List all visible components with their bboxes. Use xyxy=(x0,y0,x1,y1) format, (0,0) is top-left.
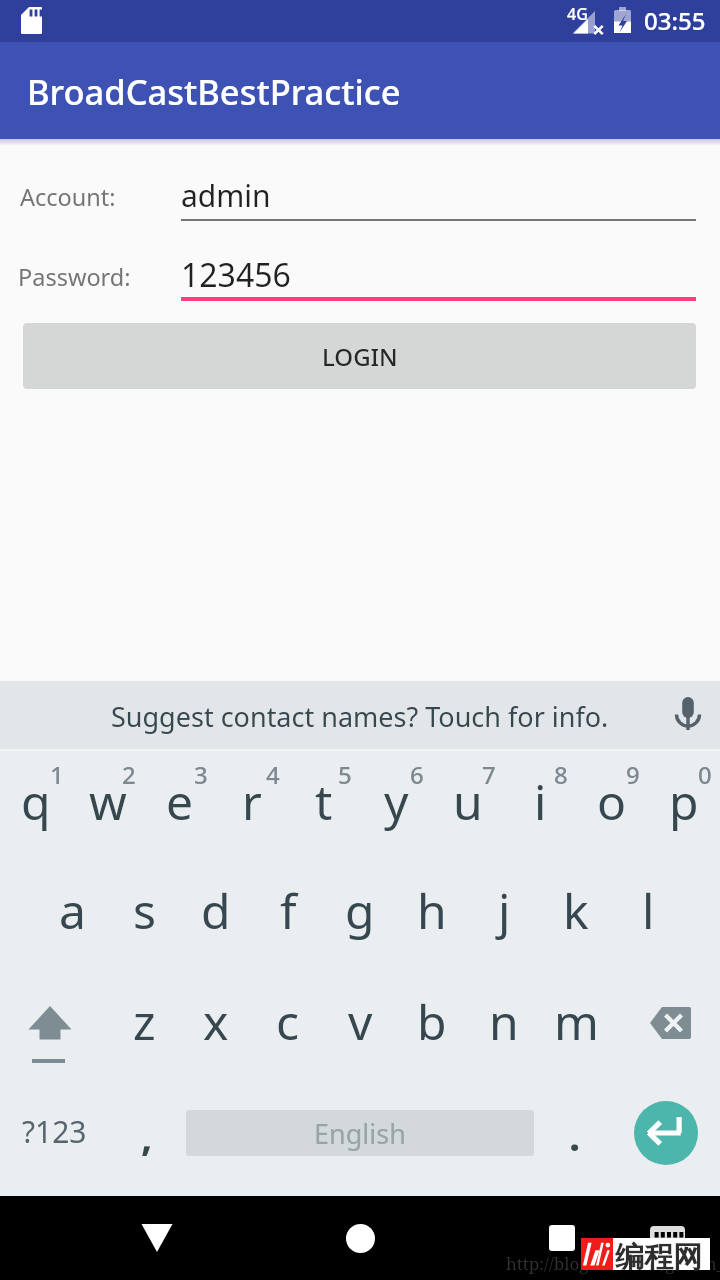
staticText: s xyxy=(133,878,156,943)
staticText: 0 xyxy=(698,758,712,791)
staticText: 6 xyxy=(410,758,424,791)
button[interactable]: 3 xyxy=(144,751,216,863)
button[interactable]: x xyxy=(180,974,252,1085)
button[interactable]: Switch keyboard xyxy=(644,1224,692,1246)
staticText: q xyxy=(21,769,51,834)
staticText: l xyxy=(642,878,655,943)
button[interactable]: 0 xyxy=(648,751,720,863)
staticText: 1 xyxy=(50,758,64,791)
button[interactable]: Enter xyxy=(634,1101,698,1165)
staticText: n xyxy=(489,989,519,1054)
button[interactable]: v xyxy=(324,974,396,1085)
button[interactable]: Home xyxy=(300,1196,420,1280)
staticText: Password: xyxy=(18,261,131,293)
staticText: w xyxy=(89,769,127,834)
staticText: x xyxy=(203,989,229,1054)
button[interactable]: k xyxy=(540,863,612,974)
button[interactable]: ?123 xyxy=(0,1085,108,1196)
button[interactable]: . xyxy=(534,1085,616,1196)
button[interactable]: Voice input xyxy=(660,688,716,744)
button[interactable]: z xyxy=(108,974,180,1085)
staticText: 2 xyxy=(122,758,136,791)
staticText: 9 xyxy=(626,758,640,791)
staticText: j xyxy=(498,878,511,943)
button[interactable]: c xyxy=(252,974,324,1085)
button[interactable]: , xyxy=(108,1085,186,1196)
staticText: c xyxy=(276,989,300,1054)
staticText: . xyxy=(569,1108,581,1162)
staticText: t xyxy=(315,769,333,834)
button[interactable]: 5 xyxy=(288,751,360,863)
button[interactable]: b xyxy=(396,974,468,1085)
button[interactable]: 1 xyxy=(0,751,72,863)
button[interactable]: 6 xyxy=(360,751,432,863)
staticText: r xyxy=(242,769,262,834)
button[interactable]: l xyxy=(612,863,684,974)
staticText: admin xyxy=(181,175,271,216)
staticText: y xyxy=(384,769,409,834)
staticText: http://blog.csdn.net/guolin_blog xyxy=(506,1252,720,1275)
staticText: 3 xyxy=(194,758,208,791)
staticText: 5 xyxy=(338,758,352,791)
staticText: Account: xyxy=(20,181,116,213)
button[interactable]: 7 xyxy=(432,751,504,863)
staticText: u xyxy=(453,769,483,834)
staticText: 4G xyxy=(567,3,588,25)
staticText: BroadCastBestPractice xyxy=(27,68,401,115)
staticText: o xyxy=(597,769,627,834)
staticText: , xyxy=(141,1108,153,1162)
staticText: Suggest contact names? Touch for info. xyxy=(111,698,609,735)
staticText: 123456 xyxy=(181,253,291,297)
staticText: 7 xyxy=(482,758,496,791)
staticText: b xyxy=(417,989,447,1054)
staticText: d xyxy=(201,878,231,943)
button[interactable]: m xyxy=(540,974,612,1085)
button[interactable]: h xyxy=(396,863,468,974)
button[interactable]: Back xyxy=(97,1196,217,1280)
staticText: 8 xyxy=(554,758,568,791)
button[interactable]: 9 xyxy=(576,751,648,863)
button[interactable]: Suggest contact names? Touch for info. xyxy=(0,681,720,751)
staticText: h xyxy=(417,878,447,943)
staticText: m xyxy=(554,989,599,1054)
button[interactable]: n xyxy=(468,974,540,1085)
staticText: v xyxy=(348,989,373,1054)
staticText: e xyxy=(166,769,194,834)
staticText: LOGIN xyxy=(322,340,398,373)
staticText: z xyxy=(133,989,156,1054)
staticText: 03:55 xyxy=(644,4,706,37)
button[interactable]: a xyxy=(36,863,108,974)
button[interactable]: 4 xyxy=(216,751,288,863)
staticText: a xyxy=(59,878,86,943)
staticText: English xyxy=(314,1115,406,1152)
staticText: ?123 xyxy=(22,1111,87,1152)
button[interactable]: Recents xyxy=(502,1196,622,1280)
staticText: 编程网 xyxy=(615,1239,702,1271)
button[interactable]: s xyxy=(108,863,180,974)
staticText: k xyxy=(563,878,589,943)
button[interactable]: 8 xyxy=(504,751,576,863)
button[interactable]: Backspace xyxy=(612,974,720,1085)
staticText: f xyxy=(280,878,297,943)
staticText: p xyxy=(669,769,699,834)
button[interactable]: Shift xyxy=(0,974,108,1085)
staticText: 4 xyxy=(266,758,280,791)
button[interactable]: d xyxy=(180,863,252,974)
button[interactable]: g xyxy=(324,863,396,974)
button[interactable]: f xyxy=(252,863,324,974)
button[interactable]: j xyxy=(468,863,540,974)
button[interactable]: 2 xyxy=(72,751,144,863)
staticText: g xyxy=(345,878,375,943)
button[interactable]: LOGIN xyxy=(23,323,696,389)
staticText: i xyxy=(534,769,547,834)
button[interactable]: English xyxy=(186,1110,534,1156)
